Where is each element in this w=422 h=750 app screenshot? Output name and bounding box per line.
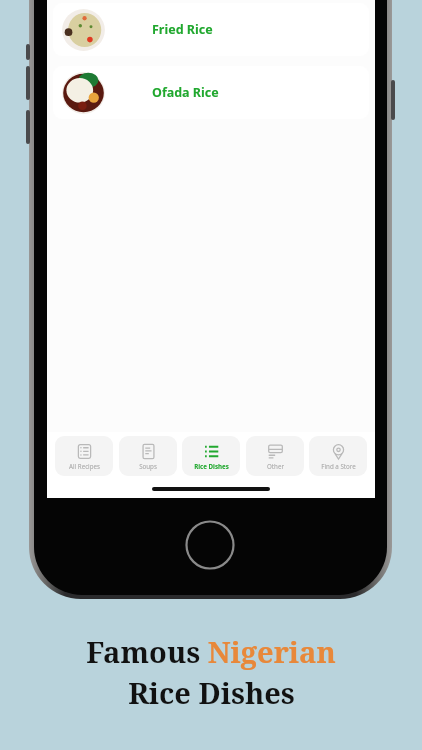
staticText: Find a Store <box>321 462 356 470</box>
button[interactable]: Home <box>185 520 235 570</box>
staticText: Fried Rice <box>152 21 213 38</box>
staticText: All Recipes <box>69 462 100 470</box>
button[interactable]: Rice Dishes <box>182 436 240 476</box>
staticText: Rice Dishes <box>194 462 229 470</box>
button[interactable]: Fried Rice <box>53 3 369 56</box>
staticText: Soups <box>139 462 157 470</box>
staticText: Famous Nigerian <box>86 632 336 671</box>
button[interactable]: All Recipes <box>55 436 113 476</box>
button[interactable]: Find a Store <box>309 436 367 476</box>
button[interactable]: Soups <box>119 436 177 476</box>
staticText: Ofada Rice <box>152 84 219 101</box>
button[interactable]: Other <box>246 436 304 476</box>
staticText: Other <box>267 462 284 470</box>
button[interactable]: Ofada Rice <box>53 66 369 119</box>
staticText: Rice Dishes <box>128 673 295 712</box>
